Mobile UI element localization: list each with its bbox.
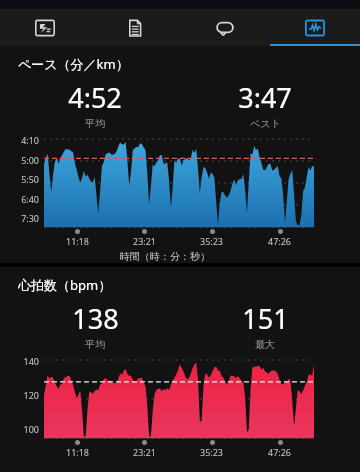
- staticText: 47:26: [268, 446, 292, 458]
- staticText: 平均: [85, 117, 105, 130]
- staticText: 時間（時：分：秒）: [0, 250, 330, 263]
- button[interactable]: Laps: [180, 9, 270, 46]
- button[interactable]: Charts: [270, 9, 360, 46]
- staticText: 47:26: [268, 235, 292, 247]
- staticText: ペース（分／km）: [18, 55, 129, 73]
- staticText: 7:30: [0, 212, 39, 224]
- staticText: 35:23: [200, 235, 224, 247]
- staticText: 35:23: [200, 446, 224, 458]
- staticText: 120: [0, 389, 39, 401]
- staticText: 140: [0, 355, 39, 367]
- staticText: 11:18: [66, 235, 90, 247]
- staticText: 11:18: [66, 446, 90, 458]
- button[interactable]: Splits: [90, 9, 180, 46]
- staticText: 4:10: [0, 134, 39, 146]
- staticText: 6:40: [0, 193, 39, 205]
- staticText: ベスト: [250, 117, 281, 130]
- staticText: 151: [242, 300, 289, 337]
- button[interactable]: 心拍数（bpm）: [0, 267, 360, 472]
- button[interactable]: ペース（分／km）: [0, 46, 360, 263]
- staticText: 3:47: [238, 79, 292, 116]
- staticText: 5:00: [0, 154, 39, 166]
- staticText: 心拍数（bpm）: [18, 276, 112, 294]
- staticText: 4:52: [68, 79, 122, 116]
- staticText: 23:21: [133, 446, 157, 458]
- button[interactable]: Map: [0, 9, 90, 46]
- staticText: 平均: [85, 338, 105, 351]
- staticText: 23:21: [133, 235, 157, 247]
- staticText: 138: [72, 300, 119, 337]
- staticText: 最大: [255, 338, 275, 351]
- staticText: 5:50: [0, 173, 39, 185]
- staticText: 100: [0, 423, 39, 435]
